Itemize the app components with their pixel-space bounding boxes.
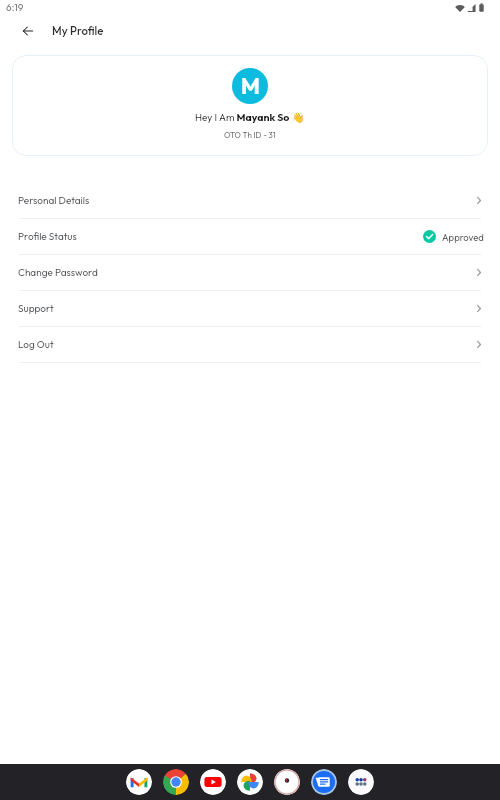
button[interactable]: Gmail	[126, 769, 152, 795]
button[interactable]: Support	[0, 291, 500, 327]
button[interactable]: Messages	[311, 769, 337, 795]
button[interactable]: Back	[14, 17, 41, 44]
button[interactable]: Profile Status	[0, 219, 500, 255]
button[interactable]: Change Password	[0, 255, 500, 291]
button[interactable]: Personal Details	[0, 183, 500, 219]
staticText: 👋	[292, 112, 305, 124]
button[interactable]: Chrome	[163, 769, 189, 795]
staticText: Change Password	[18, 266, 98, 279]
staticText: Profile Status	[18, 230, 77, 243]
button[interactable]: Assistant	[274, 769, 300, 795]
button[interactable]: M	[12, 55, 488, 156]
button[interactable]: Photos	[237, 769, 263, 795]
staticText: Approved	[442, 231, 484, 243]
staticText: OTO Th ID - 31	[224, 130, 276, 140]
staticText: Support	[18, 302, 54, 315]
staticText: Personal Details	[18, 194, 90, 207]
button[interactable]: All apps	[348, 769, 374, 795]
staticText: My Profile	[52, 23, 104, 37]
staticText: Log Out	[18, 338, 54, 351]
staticText: Hey I Am Mayank So	[195, 110, 290, 123]
button[interactable]: YouTube	[200, 769, 226, 795]
button[interactable]: Log Out	[0, 327, 500, 363]
staticText: M	[241, 72, 260, 100]
staticText: 6:19	[6, 1, 24, 14]
